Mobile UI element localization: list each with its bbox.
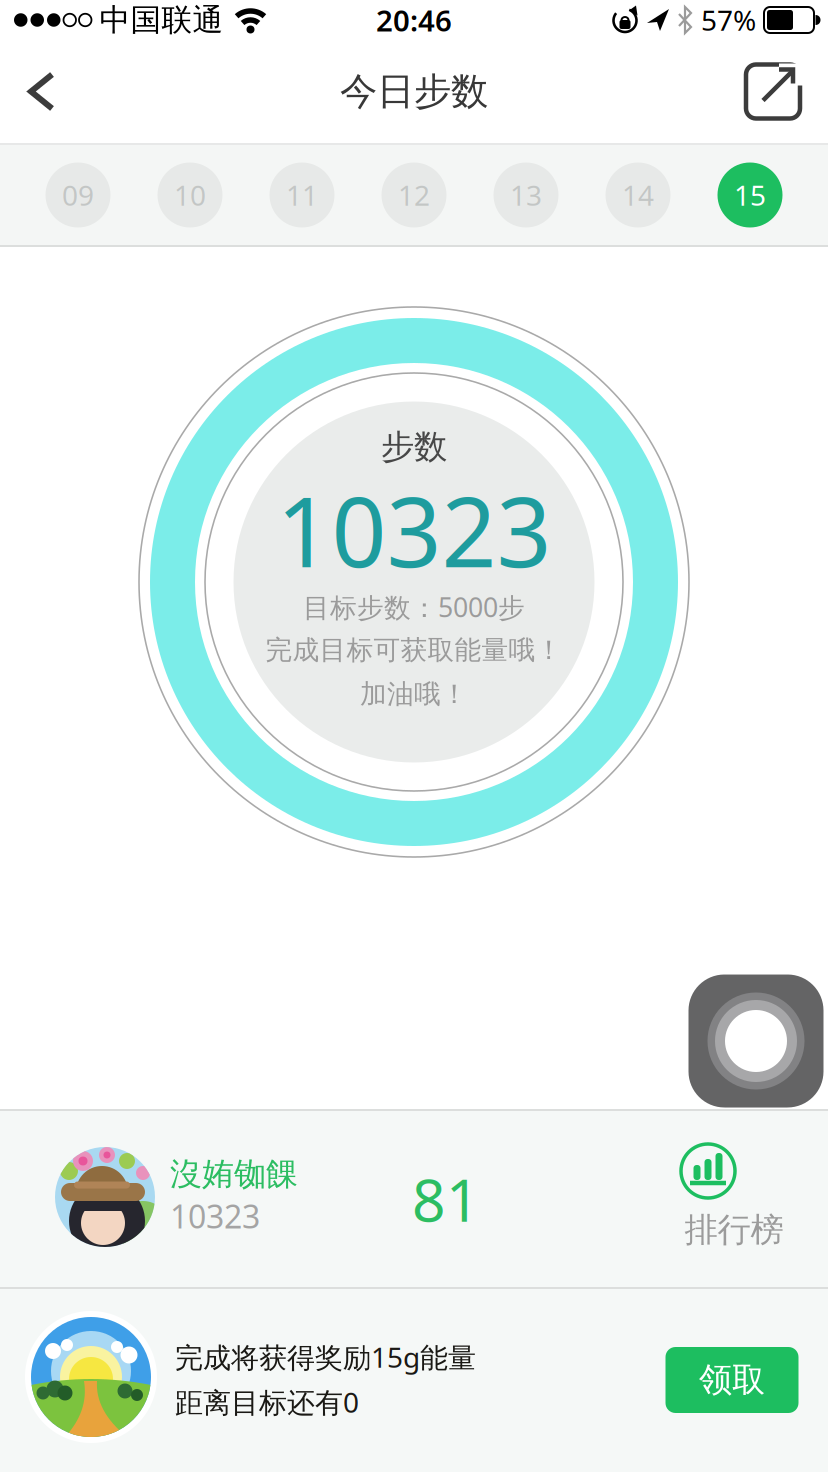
- button[interactable]: Share: [728, 40, 828, 143]
- staticText: 领取: [699, 1359, 765, 1400]
- staticText: 11: [286, 176, 318, 214]
- staticText: 中国联通: [99, 1, 223, 39]
- staticText: 10: [174, 176, 206, 214]
- staticText: 09: [62, 176, 94, 214]
- staticText: 14: [622, 176, 654, 214]
- staticText: 15: [734, 176, 766, 214]
- button[interactable]: 15日: [717, 162, 782, 227]
- staticText: 12: [398, 176, 430, 214]
- staticText: 10323: [170, 1195, 260, 1237]
- button[interactable]: AssistiveTouch: [688, 974, 823, 1107]
- button[interactable]: 排行榜: [664, 1125, 804, 1273]
- staticText: 57%: [701, 1, 756, 39]
- staticText: 步数: [381, 426, 447, 467]
- staticText: 今日步数: [340, 69, 488, 114]
- staticText: 距离目标还有0: [175, 1383, 359, 1421]
- button[interactable]: 14日: [605, 162, 670, 227]
- staticText: 目标步数：5000步: [303, 589, 525, 625]
- button[interactable]: 11日: [269, 162, 334, 227]
- staticText: 10323: [276, 466, 551, 594]
- staticText: 完成目标可获取能量哦！: [265, 634, 562, 666]
- staticText: 81: [412, 1160, 480, 1238]
- staticText: 13: [510, 176, 542, 214]
- button[interactable]: 10日: [157, 162, 222, 227]
- staticText: 完成将获得奖励15g能量: [175, 1338, 476, 1376]
- staticText: 20:46: [376, 0, 452, 39]
- button[interactable]: 12日: [381, 162, 446, 227]
- button[interactable]: 领取: [665, 1347, 798, 1413]
- staticText: 排行榜: [684, 1209, 783, 1250]
- staticText: 加油哦！: [360, 678, 468, 710]
- button[interactable]: 13日: [493, 162, 558, 227]
- button[interactable]: Back: [0, 40, 76, 143]
- button[interactable]: 9日: [45, 162, 110, 227]
- staticText: 沒姷铷餜: [170, 1154, 298, 1194]
